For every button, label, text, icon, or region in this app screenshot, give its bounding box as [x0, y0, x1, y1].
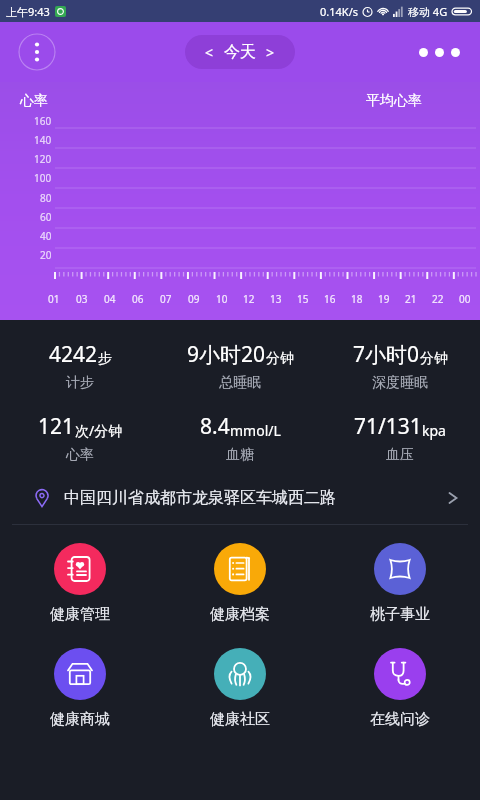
staticText: 血糖 [226, 446, 254, 464]
staticText: 桃子事业 [370, 605, 430, 624]
staticText: 01 [48, 292, 60, 306]
staticText: 09 [188, 292, 200, 306]
staticText: mmol/L [230, 421, 281, 440]
button[interactable]: 健康社区 [160, 644, 320, 733]
staticText: 40 [40, 229, 52, 243]
staticText: 13 [270, 292, 282, 306]
staticText: 15 [297, 292, 309, 306]
staticText: 健康管理 [50, 605, 110, 624]
button[interactable]: 71/131 [320, 406, 480, 470]
staticText: 12 [243, 292, 255, 306]
button[interactable]: More options [18, 33, 56, 71]
staticText: 120 [34, 152, 52, 166]
staticText: 9小时20 [187, 340, 266, 369]
staticText: 深度睡眠 [372, 374, 428, 392]
staticText: 中国四川省成都市龙泉驿区车城西二路 [64, 488, 442, 508]
button[interactable]: 4242 [0, 334, 160, 398]
staticText: 移动 4G [408, 4, 448, 19]
staticText: 分钟 [266, 350, 294, 368]
staticText: kpa [422, 421, 446, 440]
button[interactable]: 在线问诊 [320, 644, 480, 733]
staticText: 10 [216, 292, 228, 306]
staticText: 07 [160, 292, 172, 306]
staticText: 7小时0 [353, 340, 420, 369]
staticText: 8.4 [200, 412, 230, 441]
staticText: 18 [351, 292, 363, 306]
button[interactable]: 中国四川省成都市龙泉驿区车城西二路 [0, 472, 480, 524]
staticText: 19 [378, 292, 390, 306]
button[interactable]: < [185, 35, 295, 69]
button[interactable]: 9小时20 [160, 334, 320, 398]
staticText: < [205, 43, 214, 62]
staticText: 上午9:43 [6, 4, 50, 19]
staticText: 心率 [66, 446, 94, 464]
staticText: 03 [76, 292, 88, 306]
staticText: 160 [34, 114, 52, 128]
staticText: 健康社区 [210, 710, 270, 729]
staticText: 71/131 [354, 412, 422, 441]
button[interactable]: 健康管理 [0, 539, 160, 628]
staticText: 心率 [20, 92, 48, 110]
staticText: 06 [132, 292, 144, 306]
button[interactable]: Menu [413, 38, 466, 67]
staticText: 在线问诊 [370, 710, 430, 729]
staticText: 总睡眠 [219, 374, 261, 392]
button[interactable]: 健康档案 [160, 539, 320, 628]
staticText: 80 [40, 191, 52, 205]
staticText: 20 [40, 248, 52, 262]
staticText: 步 [98, 350, 112, 368]
button[interactable]: 8.4 [160, 406, 320, 470]
staticText: 分钟 [420, 350, 448, 368]
staticText: 60 [40, 210, 52, 224]
staticText: 00 [459, 292, 471, 306]
staticText: 健康档案 [210, 605, 270, 624]
staticText: 140 [34, 133, 52, 147]
staticText: 次/分钟 [75, 421, 123, 440]
button[interactable]: 桃子事业 [320, 539, 480, 628]
staticText: 04 [104, 292, 116, 306]
staticText: 22 [432, 292, 444, 306]
staticText: 平均心率 [366, 92, 422, 110]
button[interactable]: 121 [0, 406, 160, 470]
button[interactable]: 健康商城 [0, 644, 160, 733]
staticText: 21 [405, 292, 417, 306]
staticText: 16 [324, 292, 336, 306]
staticText: 血压 [386, 446, 414, 464]
staticText: 121 [38, 412, 75, 441]
staticText: 100 [34, 171, 52, 185]
staticText: 4242 [49, 340, 98, 369]
staticText: 健康商城 [50, 710, 110, 729]
staticText: 今天 [224, 42, 256, 62]
staticText: 计步 [66, 374, 94, 392]
staticText: 0.14K/s [320, 4, 358, 19]
button[interactable]: 7小时0 [320, 334, 480, 398]
staticText: > [266, 43, 275, 62]
